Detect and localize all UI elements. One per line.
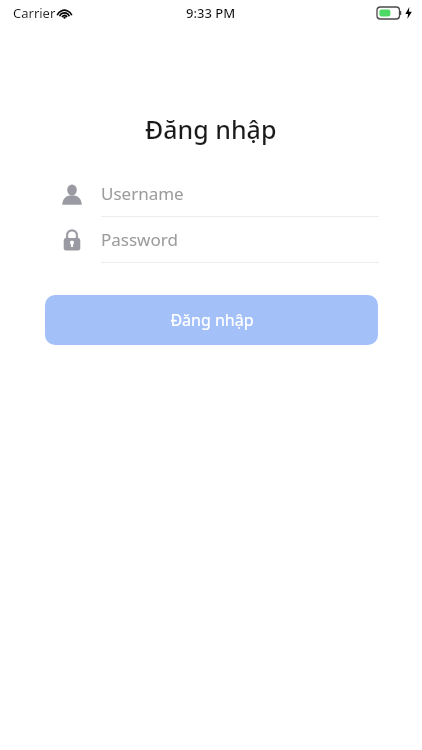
- button[interactable]: Password: [45, 217, 379, 263]
- staticText: Username: [101, 182, 184, 205]
- staticText: Đăng nhập: [145, 112, 277, 146]
- button[interactable]: Đăng nhập: [45, 295, 378, 345]
- staticText: Đăng nhập: [170, 309, 254, 331]
- other: Password: [58, 226, 86, 254]
- staticText: Carrier: [13, 4, 56, 22]
- staticText: 9:33 PM: [186, 4, 236, 22]
- other: Username: [58, 180, 86, 208]
- staticText: Password: [101, 228, 178, 251]
- button[interactable]: Username: [45, 171, 379, 217]
